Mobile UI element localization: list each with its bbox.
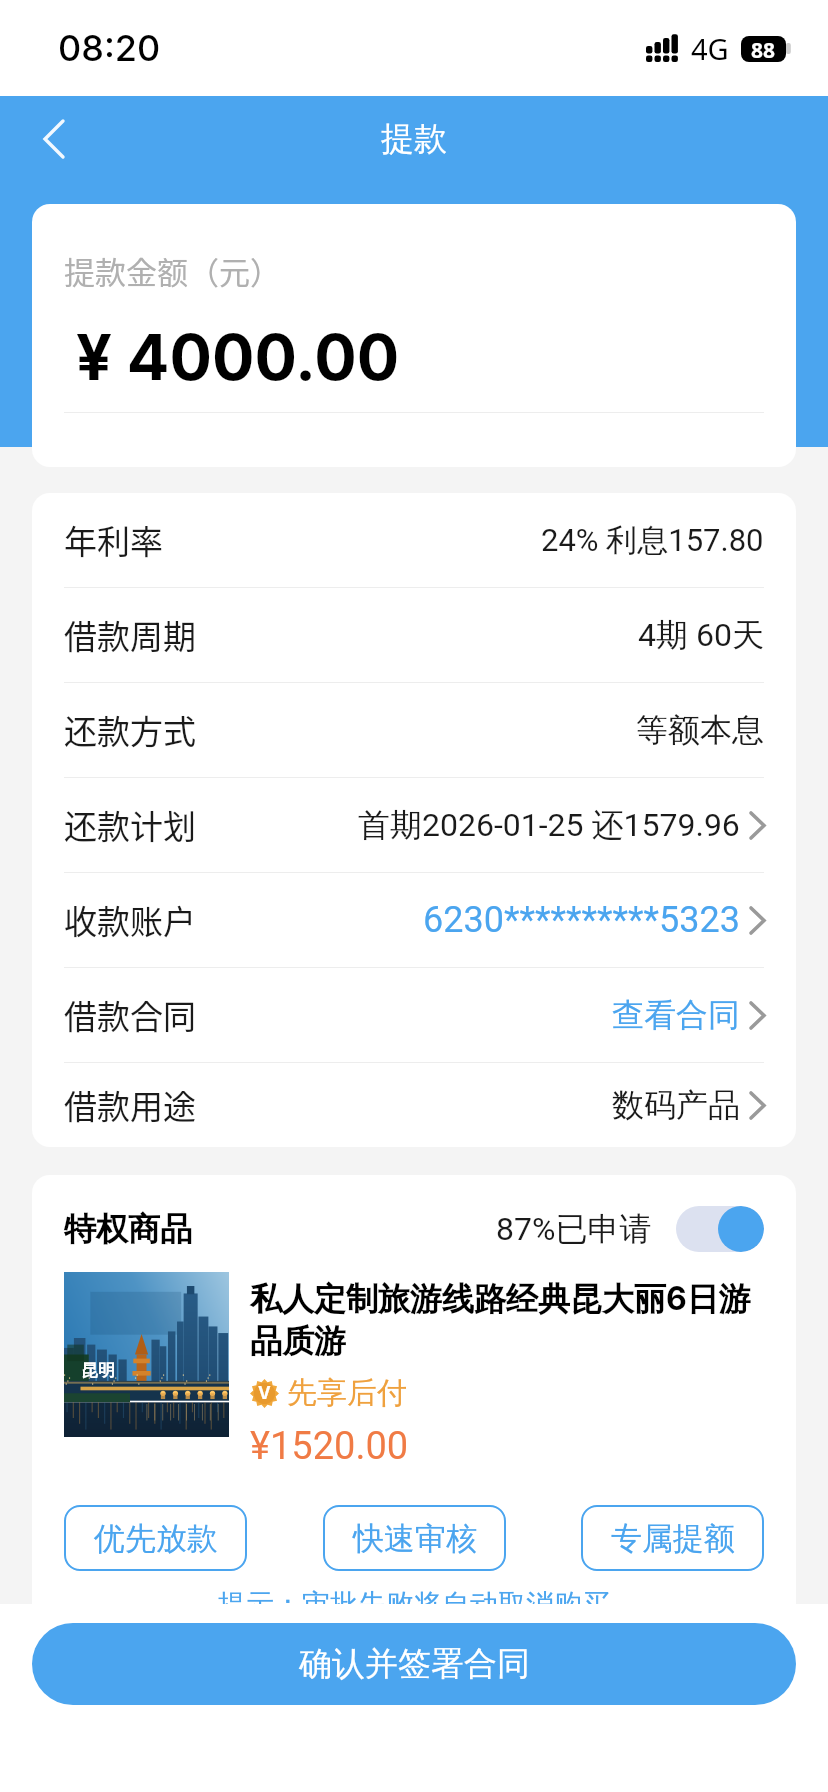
staticText: 4期 60天 xyxy=(638,615,764,655)
staticText: ¥ 4000.00 xyxy=(76,319,400,395)
staticText: 提款 xyxy=(381,118,447,160)
button[interactable]: 借款合同 xyxy=(32,968,796,1063)
button[interactable]: 借款用途 xyxy=(32,1063,796,1147)
staticText: 24% 利息157.80 xyxy=(541,521,764,560)
staticText: 数码产品 xyxy=(612,1085,740,1125)
staticText: 快速审核 xyxy=(353,1519,477,1558)
staticText: 私人定制旅游线路经典昆大丽6日游品质游 xyxy=(250,1279,782,1362)
staticText: 确认并签署合同 xyxy=(299,1643,530,1685)
other: Kunming travel photo xyxy=(64,1272,229,1437)
staticText: 首期2026-01-25 还1579.96 xyxy=(358,805,740,845)
staticText: 提示：审批失败将自动取消购买 xyxy=(32,1587,796,1622)
staticText: 提款金额（元） xyxy=(64,248,281,293)
button[interactable]: 专属提额 xyxy=(581,1505,764,1571)
staticText: 88 xyxy=(751,36,776,62)
staticText: 查看合同 xyxy=(612,995,740,1035)
staticText: 87%已申请 xyxy=(496,1209,652,1249)
staticText: 借款合同 xyxy=(64,991,196,1039)
staticText: 还款计划 xyxy=(64,801,196,849)
staticText: 借款用途 xyxy=(64,1081,196,1129)
other: 先享后付 badge xyxy=(250,1379,279,1408)
staticText: ¥1520.00 xyxy=(250,1424,409,1469)
button[interactable]: 快速审核 xyxy=(323,1505,506,1571)
staticText: 4G xyxy=(691,29,729,68)
staticText: 6230**********5323 xyxy=(423,899,740,941)
staticText: 年利率 xyxy=(64,516,163,564)
button[interactable]: Toggle privilege product xyxy=(676,1206,764,1252)
staticText: 借款周期 xyxy=(64,611,196,659)
staticText: 优先放款 xyxy=(94,1519,218,1558)
staticText: 08:20 xyxy=(58,26,161,70)
button[interactable]: Back xyxy=(12,97,96,181)
staticText: 专属提额 xyxy=(611,1519,735,1558)
staticText: 昆明 xyxy=(81,1360,115,1381)
staticText: 特权商品 xyxy=(64,1209,192,1249)
button[interactable]: 优先放款 xyxy=(64,1505,247,1571)
staticText: 先享后付 xyxy=(287,1374,407,1412)
button[interactable]: 年利率 xyxy=(32,493,796,588)
button[interactable]: 还款方式 xyxy=(32,683,796,778)
button[interactable]: 借款周期 xyxy=(32,588,796,683)
staticText: 还款方式 xyxy=(64,706,196,754)
button[interactable]: 确认并签署合同 xyxy=(32,1623,796,1705)
staticText: V xyxy=(258,1383,271,1404)
staticText: 收款账户 xyxy=(64,896,196,944)
staticText: 等额本息 xyxy=(636,710,764,750)
button[interactable]: 还款计划 xyxy=(32,778,796,873)
button[interactable]: 收款账户 xyxy=(32,873,796,968)
